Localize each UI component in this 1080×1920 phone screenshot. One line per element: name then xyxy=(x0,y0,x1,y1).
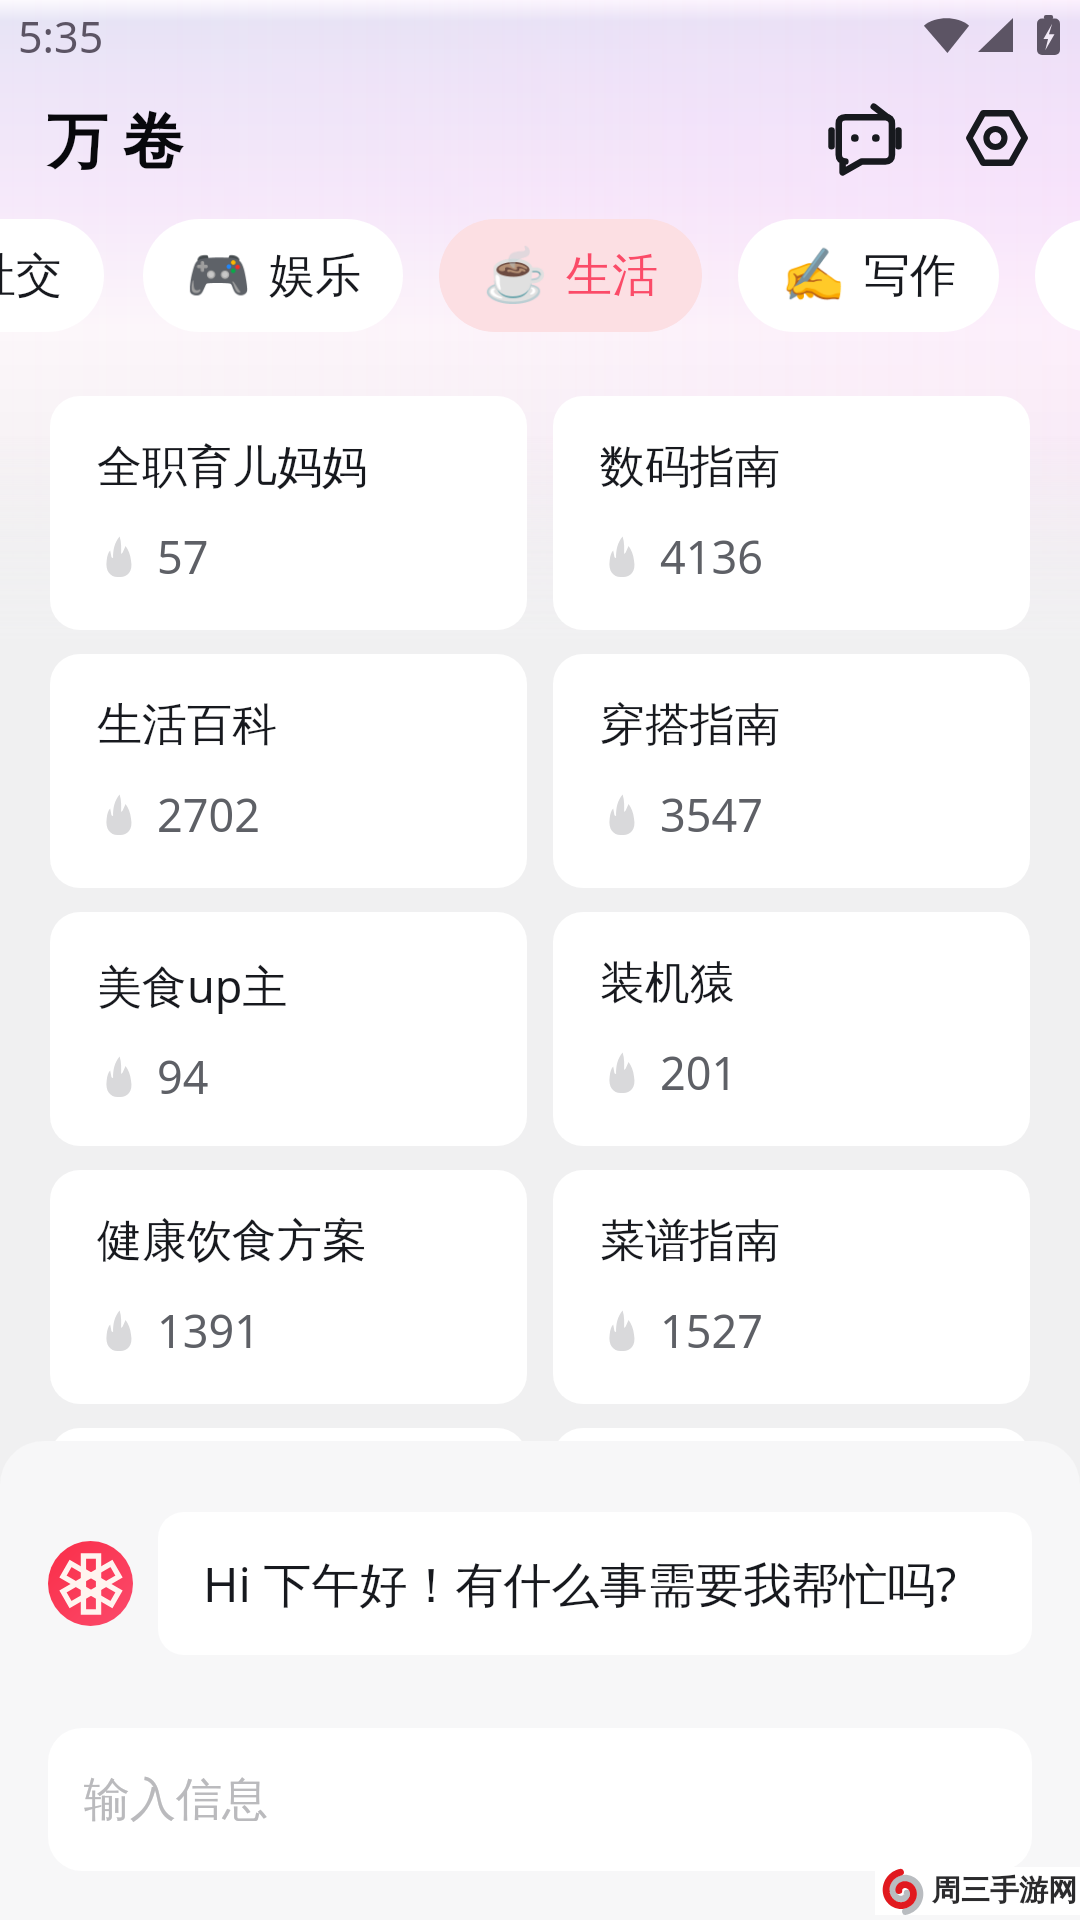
staticText: ✍️ xyxy=(781,245,846,306)
staticText: 写作 xyxy=(864,247,956,305)
staticText: 生活百科 xyxy=(97,697,277,754)
staticText: 94 xyxy=(157,1046,209,1107)
button[interactable]: 💬 xyxy=(0,219,104,332)
button[interactable]: 装机猿 xyxy=(553,912,1030,1146)
staticText: 🎮 xyxy=(186,245,251,306)
staticText: 美食up主 xyxy=(97,955,288,1016)
button[interactable]: ☕ xyxy=(439,219,702,332)
button[interactable]: 健康饮食方案 xyxy=(50,1170,527,1404)
staticText: 1391 xyxy=(157,1300,260,1361)
staticText: 生活 xyxy=(566,247,658,305)
button[interactable] xyxy=(1035,219,1080,332)
staticText: 装机猿 xyxy=(600,955,735,1012)
button[interactable]: ✍️ xyxy=(738,219,999,332)
staticText: 2702 xyxy=(157,784,260,845)
staticText: 输入信息 xyxy=(84,1771,268,1829)
button[interactable]: 旅行攻略 xyxy=(50,1428,527,1662)
button[interactable]: 全职育儿妈妈 xyxy=(50,396,527,630)
staticText: ☕ xyxy=(483,245,548,306)
button[interactable]: 数码指南 xyxy=(553,396,1030,630)
staticText: 全职育儿妈妈 xyxy=(97,439,367,496)
staticText: 201 xyxy=(660,1042,738,1103)
button[interactable]: 输入信息 xyxy=(48,1728,1032,1871)
staticText: 1527 xyxy=(660,1300,763,1361)
button[interactable]: 菜谱指南 xyxy=(553,1170,1030,1404)
staticText: 57 xyxy=(157,526,209,587)
staticText: 882 xyxy=(157,1558,235,1619)
staticText: 5:35 xyxy=(18,7,104,66)
button[interactable]: 美食up主 xyxy=(50,912,527,1146)
button[interactable]: 穿搭指南 xyxy=(553,654,1030,888)
staticText: 穿搭指南 xyxy=(600,697,780,754)
button[interactable]: 摄影技巧 xyxy=(553,1428,1030,1662)
staticText: 数码指南 xyxy=(600,439,780,496)
button[interactable]: AI assistant xyxy=(817,90,913,186)
button[interactable]: 生活百科 xyxy=(50,654,527,888)
staticText: 社交 xyxy=(0,247,62,305)
staticText: 娱乐 xyxy=(269,247,361,305)
staticText: 旅行攻略 xyxy=(97,1471,277,1528)
staticText: 3547 xyxy=(660,784,763,845)
staticText: 摄影技巧 xyxy=(600,1471,780,1528)
staticText: 4136 xyxy=(660,526,763,587)
staticText: 健康饮食方案 xyxy=(97,1213,367,1270)
staticText: 菜谱指南 xyxy=(600,1213,780,1270)
staticText: 周三手游网 xyxy=(932,1872,1077,1909)
staticText: Hi 下午好！有什么事需要我帮忙吗? xyxy=(203,1551,957,1617)
staticText: 万 卷 xyxy=(47,98,183,180)
staticText: 640 xyxy=(660,1558,738,1619)
button[interactable]: Settings xyxy=(949,90,1045,186)
button[interactable]: 🎮 xyxy=(143,219,403,332)
